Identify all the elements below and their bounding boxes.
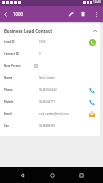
staticText: 1000 xyxy=(39,40,46,44)
button[interactable]: Email xyxy=(0,108,103,120)
staticText: 0044888999 xyxy=(39,124,55,128)
button[interactable]: Name xyxy=(0,72,103,84)
button[interactable]: Call xyxy=(87,97,97,107)
staticText: 00445566644 xyxy=(39,88,57,92)
button[interactable]: Home xyxy=(44,167,60,183)
button[interactable]: Phone xyxy=(0,84,103,96)
staticText: Lead ID xyxy=(4,40,15,44)
button[interactable]: Delete xyxy=(77,6,89,22)
button[interactable]: Fax xyxy=(0,120,103,132)
button[interactable]: Back xyxy=(14,167,30,183)
staticText: New Person xyxy=(4,64,21,68)
button[interactable]: New Person xyxy=(0,60,103,72)
button[interactable]: Contact ID xyxy=(0,48,103,60)
staticText: 12:43 xyxy=(93,0,101,4)
button[interactable]: New Person xyxy=(34,64,38,68)
button[interactable]: Call xyxy=(87,85,97,95)
staticText: Phone xyxy=(4,88,13,92)
button[interactable]: Business Lead Contact xyxy=(0,25,103,36)
button[interactable]: Lead ID xyxy=(0,36,103,48)
button[interactable]: Mobile xyxy=(0,96,103,108)
staticText: Email xyxy=(4,112,12,116)
button[interactable]: Edit xyxy=(65,6,77,22)
staticText: nick.carden@mail.com xyxy=(39,112,69,116)
staticText: 0044644777 xyxy=(39,100,55,104)
staticText: 0 xyxy=(39,52,41,56)
button[interactable]: WhatsApp xyxy=(87,37,97,47)
button[interactable]: Back xyxy=(0,6,10,22)
staticText: 1000 xyxy=(13,11,24,17)
staticText: Mobile xyxy=(4,100,14,104)
button[interactable]: Email xyxy=(87,109,97,119)
staticText: Nick Carden xyxy=(39,76,55,80)
button[interactable]: Recents xyxy=(73,167,89,183)
staticText: Name xyxy=(4,76,13,80)
staticText: Fax xyxy=(4,124,9,128)
staticText: Business Lead Contact xyxy=(4,28,53,34)
button[interactable]: More options xyxy=(89,6,103,22)
staticText: Contact ID xyxy=(4,52,19,56)
